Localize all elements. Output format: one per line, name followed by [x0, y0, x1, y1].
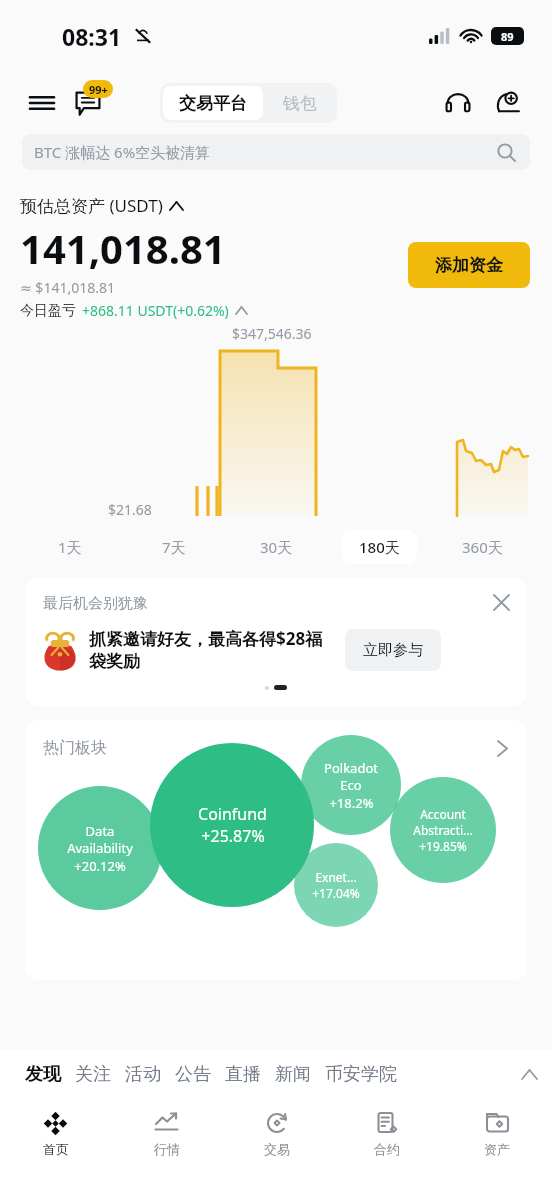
button[interactable]: 立即参与: [345, 629, 441, 671]
button[interactable]: Menu: [20, 81, 64, 125]
staticText: Polkadot Eco: [324, 759, 378, 794]
staticText: $347,546.36: [232, 324, 312, 343]
staticText: 发现: [25, 1063, 61, 1086]
staticText: 1天: [58, 537, 82, 557]
staticText: 交易: [264, 1141, 290, 1157]
staticText: 热门板块: [43, 738, 107, 758]
staticText: 币安学院: [325, 1063, 397, 1086]
button[interactable]: Data Availability: [38, 786, 162, 910]
staticText: 7天: [162, 537, 186, 557]
button[interactable]: 公告: [175, 1050, 211, 1098]
button[interactable]: 交易: [222, 1098, 332, 1170]
staticText: Exnet...: [315, 869, 357, 885]
button[interactable]: 添加资金: [408, 242, 530, 288]
staticText: $21.68: [108, 500, 152, 519]
button[interactable]: Collapse: [514, 1059, 544, 1089]
staticText: 新闻: [275, 1063, 311, 1086]
button[interactable]: 钱包: [283, 86, 317, 120]
button[interactable]: 行情: [111, 1098, 222, 1170]
button[interactable]: Messages: [62, 77, 114, 129]
staticText: 89: [501, 29, 514, 44]
button[interactable]: Coinfund: [150, 743, 314, 907]
button[interactable]: Polkadot Eco: [301, 735, 401, 835]
button[interactable]: Account Abstracti...: [390, 777, 496, 883]
staticText: 08:31: [62, 21, 122, 52]
button[interactable]: 币安学院: [325, 1050, 397, 1098]
staticText: 活动: [125, 1063, 161, 1086]
staticText: +20.12%: [74, 857, 126, 875]
staticText: 141,018.81: [20, 221, 226, 275]
staticText: 180天: [359, 537, 400, 557]
button[interactable]: 交易平台: [179, 86, 247, 120]
staticText: Coinfund: [198, 803, 267, 825]
button[interactable]: Deposit: [486, 81, 530, 125]
staticText: 最后机会别犹豫: [43, 594, 148, 613]
staticText: 抓紧邀请好友，最高各得$28福袋奖励: [89, 627, 339, 672]
button[interactable]: 关注: [75, 1050, 111, 1098]
staticText: Data Availability: [67, 822, 133, 857]
staticText: BTC 涨幅达 6%空头被清算: [34, 142, 211, 162]
button[interactable]: 最后机会别犹豫: [25, 578, 527, 706]
button[interactable]: 活动: [125, 1050, 161, 1098]
staticText: Account Abstracti...: [413, 806, 473, 838]
staticText: 直播: [225, 1063, 261, 1086]
button[interactable]: 1天: [32, 530, 108, 564]
button[interactable]: 30天: [239, 530, 314, 564]
staticText: 30天: [260, 537, 293, 557]
staticText: +25.87%: [201, 825, 265, 847]
button[interactable]: 360天: [445, 530, 520, 564]
staticText: 360天: [462, 537, 503, 557]
staticText: +19.85%: [419, 838, 467, 854]
staticText: 预估总资产 (USDT): [20, 194, 163, 217]
button[interactable]: Support: [436, 81, 480, 125]
staticText: 首页: [43, 1141, 69, 1157]
button[interactable]: 发现: [25, 1050, 61, 1098]
button[interactable]: 资产: [442, 1098, 552, 1170]
staticText: 资产: [484, 1141, 510, 1157]
staticText: 公告: [175, 1063, 211, 1086]
staticText: 今日盈亏: [20, 302, 76, 320]
button[interactable]: 合约: [332, 1098, 442, 1170]
staticText: 立即参与: [363, 641, 423, 660]
button[interactable]: Exnet...: [294, 843, 378, 927]
button[interactable]: 今日盈亏: [20, 301, 247, 320]
staticText: 合约: [374, 1141, 400, 1157]
staticText: ≈ $141,018.81: [20, 278, 115, 297]
button[interactable]: 直播: [225, 1050, 261, 1098]
button[interactable]: 新闻: [275, 1050, 311, 1098]
staticText: +868.11 USDT(+0.62%): [82, 301, 229, 320]
button[interactable]: 首页: [0, 1098, 111, 1170]
staticText: 关注: [75, 1063, 111, 1086]
button[interactable]: 预估总资产 (USDT): [20, 194, 183, 217]
staticText: 添加资金: [435, 255, 503, 276]
staticText: 99+: [89, 82, 108, 97]
staticText: +18.2%: [329, 794, 374, 812]
staticText: 行情: [154, 1141, 180, 1157]
staticText: +17.04%: [312, 885, 360, 901]
button[interactable]: BTC 涨幅达 6%空头被清算: [22, 134, 530, 170]
button[interactable]: 180天: [342, 530, 417, 564]
staticText: 钱包: [283, 93, 317, 114]
button[interactable]: Close: [483, 584, 519, 620]
staticText: 交易平台: [179, 93, 247, 114]
button[interactable]: 7天: [136, 530, 211, 564]
button[interactable]: 热门板块: [25, 720, 527, 776]
